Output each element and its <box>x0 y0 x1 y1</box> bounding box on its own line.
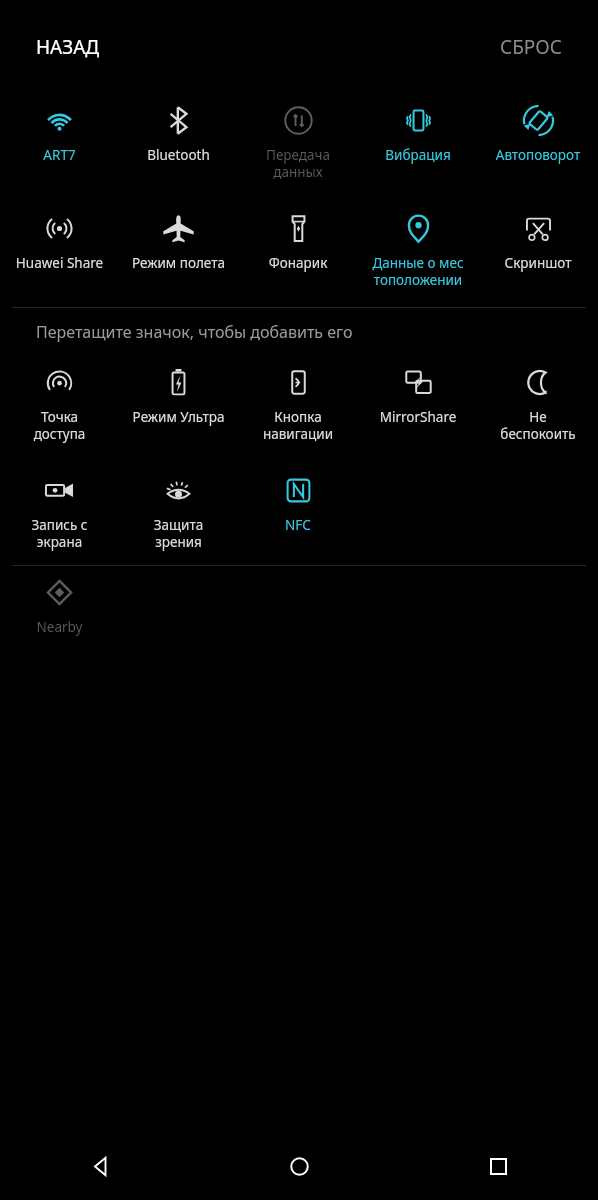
button[interactable]: Nearby <box>0 566 119 636</box>
button[interactable]: Кнопка навигации <box>238 356 358 443</box>
button[interactable]: Запись с экрана <box>0 464 119 551</box>
button[interactable]: Huawei Share <box>0 202 119 272</box>
button[interactable]: Режим Ультра <box>119 356 238 426</box>
button[interactable]: Home <box>200 1132 399 1200</box>
button[interactable]: Вибрация <box>358 94 478 164</box>
staticText: НАЗАД <box>36 34 100 60</box>
staticText: Не беспокоить <box>478 408 598 443</box>
button[interactable]: ART7 <box>0 94 119 164</box>
staticText: Защита зрения <box>119 516 238 551</box>
staticText: Режим полета <box>119 254 238 272</box>
staticText: Данные о мес тоположении <box>358 254 478 289</box>
staticText: Перетащите значок, чтобы добавить его <box>36 321 353 343</box>
staticText: Автоповорот <box>478 146 598 164</box>
button[interactable]: Автоповорот <box>478 94 598 164</box>
staticText: Кнопка навигации <box>238 408 358 443</box>
button[interactable]: Режим полета <box>119 202 238 272</box>
button[interactable]: Данные о мес тоположении <box>358 202 478 289</box>
button[interactable]: Защита зрения <box>119 464 238 551</box>
button[interactable]: Фонарик <box>238 202 358 272</box>
button[interactable]: Точка доступа <box>0 356 119 443</box>
button[interactable]: Back <box>0 1132 200 1200</box>
button[interactable]: Recent apps <box>399 1132 598 1200</box>
button[interactable]: НАЗАД <box>22 22 114 72</box>
button[interactable]: Передача данных <box>238 94 358 181</box>
staticText: NFC <box>238 516 358 534</box>
button[interactable]: СБРОС <box>486 22 576 72</box>
button[interactable]: NFC <box>238 464 358 534</box>
staticText: Nearby <box>0 618 119 636</box>
staticText: Запись с экрана <box>0 516 119 551</box>
staticText: Вибрация <box>358 146 478 164</box>
staticText: Точка доступа <box>0 408 119 443</box>
staticText: Bluetooth <box>119 146 238 164</box>
staticText: Скриншот <box>478 254 598 272</box>
button[interactable]: Не беспокоить <box>478 356 598 443</box>
button[interactable]: Bluetooth <box>119 94 238 164</box>
staticText: Режим Ультра <box>119 408 238 426</box>
staticText: Huawei Share <box>0 254 119 272</box>
button[interactable]: MirrorShare <box>358 356 478 426</box>
staticText: Передача данных <box>238 146 358 181</box>
staticText: ART7 <box>0 146 119 164</box>
staticText: СБРОС <box>500 34 562 60</box>
button[interactable]: Скриншот <box>478 202 598 272</box>
staticText: MirrorShare <box>358 408 478 426</box>
staticText: Фонарик <box>238 254 358 272</box>
